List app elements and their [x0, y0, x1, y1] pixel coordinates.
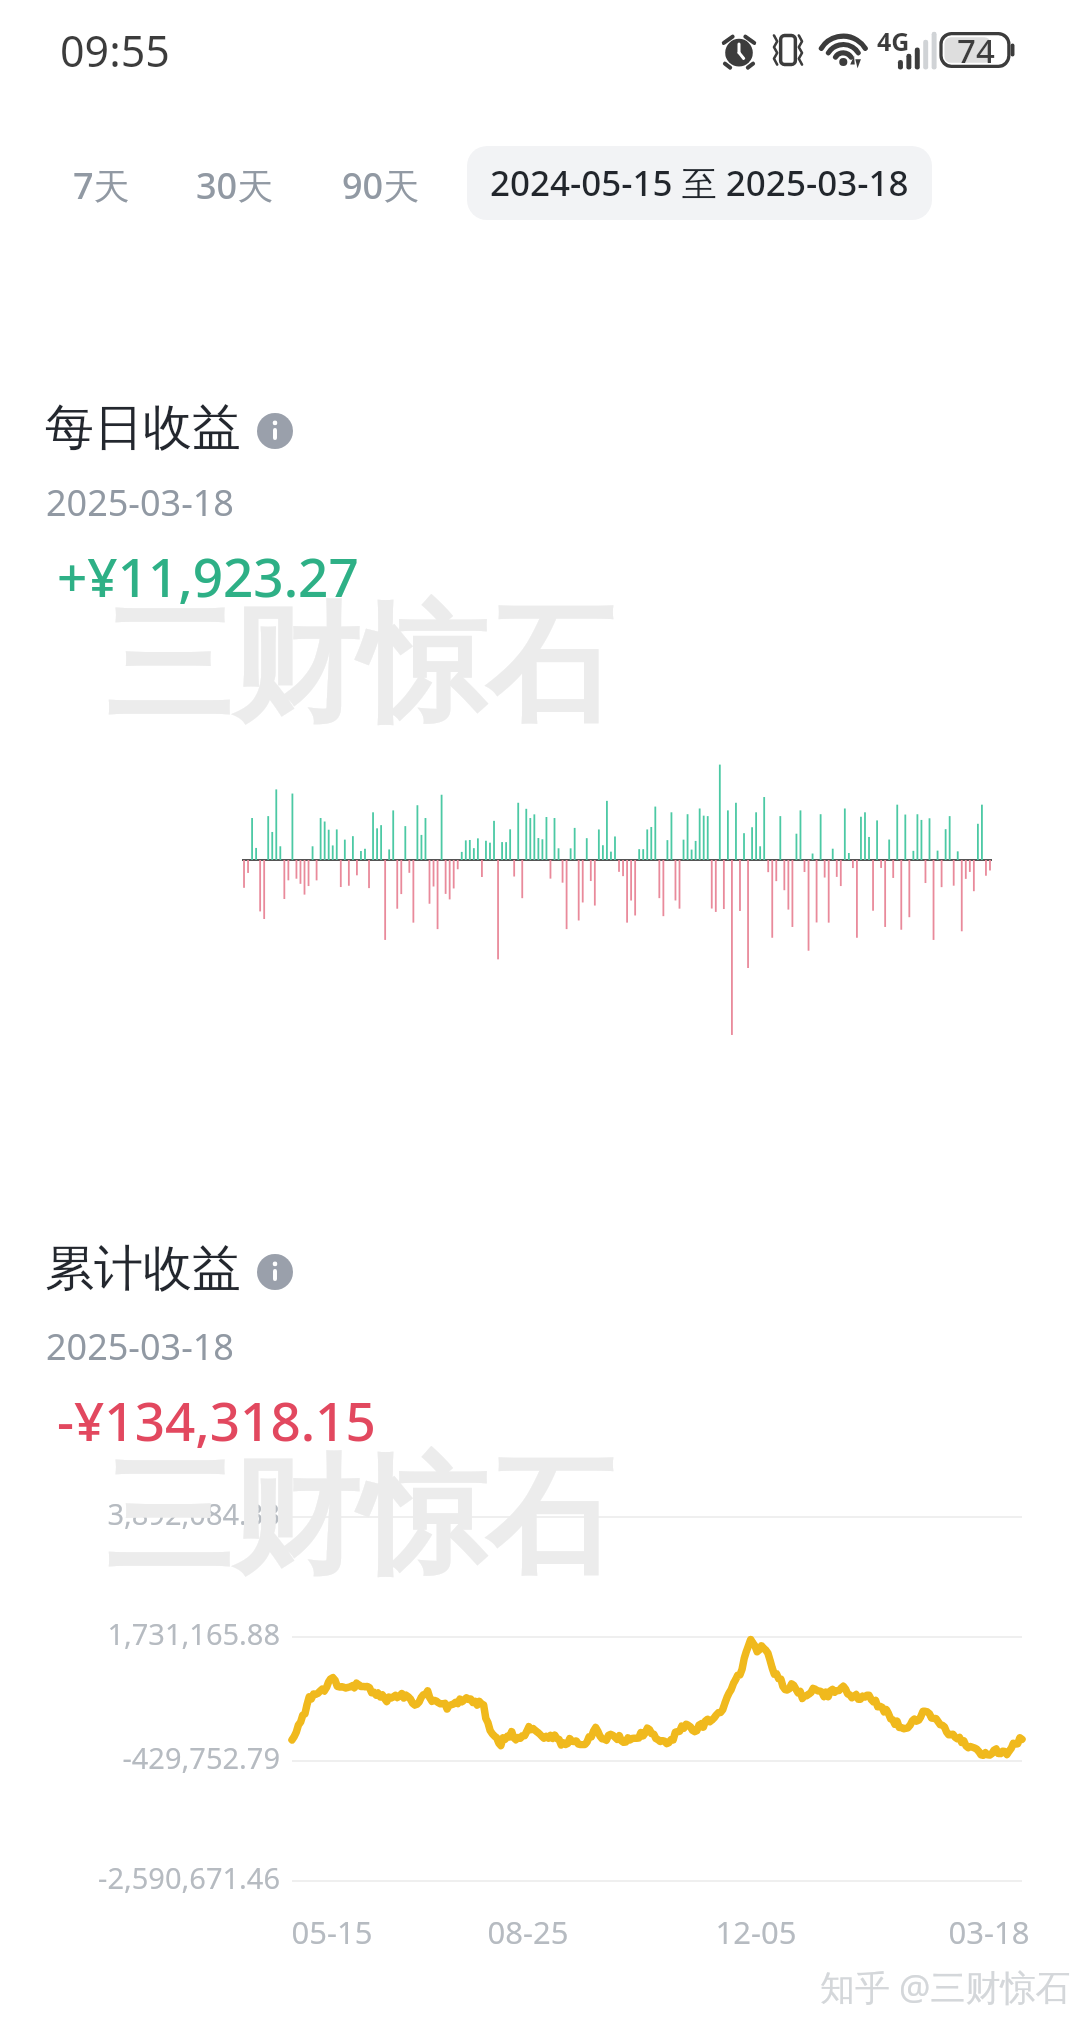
button[interactable]: Info	[257, 1254, 293, 1290]
button[interactable]: 30天	[184, 153, 286, 218]
staticText: 12-05	[676, 1911, 836, 1953]
staticText: 08-25	[448, 1911, 608, 1953]
staticText: +¥11,923.27	[57, 540, 359, 612]
staticText: 3,892,084.33	[0, 1494, 280, 1533]
button[interactable]: 90天	[330, 153, 432, 218]
staticText: 每日收益	[45, 397, 241, 459]
button[interactable]: 7天	[61, 153, 142, 218]
staticText: 知乎 @三财惊石	[820, 1963, 1071, 2011]
staticText: 三财惊石	[105, 586, 613, 746]
staticText: 30天	[196, 161, 274, 210]
staticText: -2,590,671.46	[0, 1858, 280, 1897]
staticText: 09:55	[60, 21, 170, 80]
staticText: 2025-03-18	[46, 478, 234, 527]
staticText: 74	[957, 28, 995, 72]
staticText: 1,731,165.88	[0, 1614, 280, 1653]
staticText: -429,752.79	[0, 1738, 280, 1777]
button[interactable]: Info	[257, 413, 293, 449]
staticText: 05-15	[252, 1911, 412, 1953]
staticText: 2024-05-15 至 2025-03-18	[490, 159, 909, 207]
staticText: 2025-03-18	[46, 1322, 234, 1371]
staticText: 累计收益	[45, 1238, 241, 1300]
staticText: -¥134,318.15	[57, 1384, 376, 1456]
staticText: 90天	[342, 161, 420, 210]
button[interactable]: 2024-05-15 至 2025-03-18	[467, 146, 932, 220]
staticText: 4G	[877, 24, 910, 58]
staticText: 03-18	[909, 1911, 1069, 1953]
staticText: 7天	[73, 161, 130, 210]
staticText: 三财惊石	[105, 1438, 613, 1598]
